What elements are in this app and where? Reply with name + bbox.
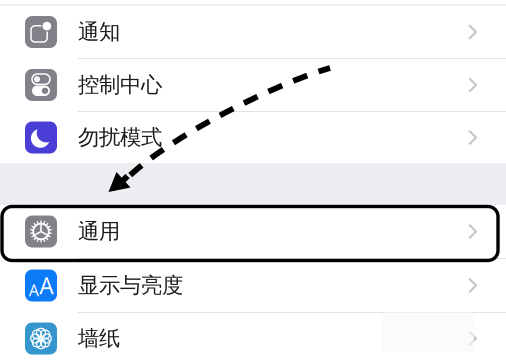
button[interactable]: 通知 (0, 6, 506, 58)
button[interactable]: 墙纸 (0, 313, 506, 364)
staticText: 控制中心 (78, 72, 162, 98)
button[interactable]: A (0, 259, 506, 312)
staticText: 显示与亮度 (78, 272, 183, 299)
staticText: 墙纸 (78, 325, 120, 352)
staticText: A (29, 279, 39, 300)
button[interactable]: 控制中心 (0, 59, 506, 111)
staticText: 通用 (78, 218, 120, 245)
staticText: A (39, 270, 53, 300)
button[interactable]: 勿扰模式 (0, 112, 506, 163)
staticText: 通知 (78, 19, 120, 45)
button[interactable]: 通用 (0, 205, 506, 258)
staticText: 勿扰模式 (78, 124, 162, 151)
